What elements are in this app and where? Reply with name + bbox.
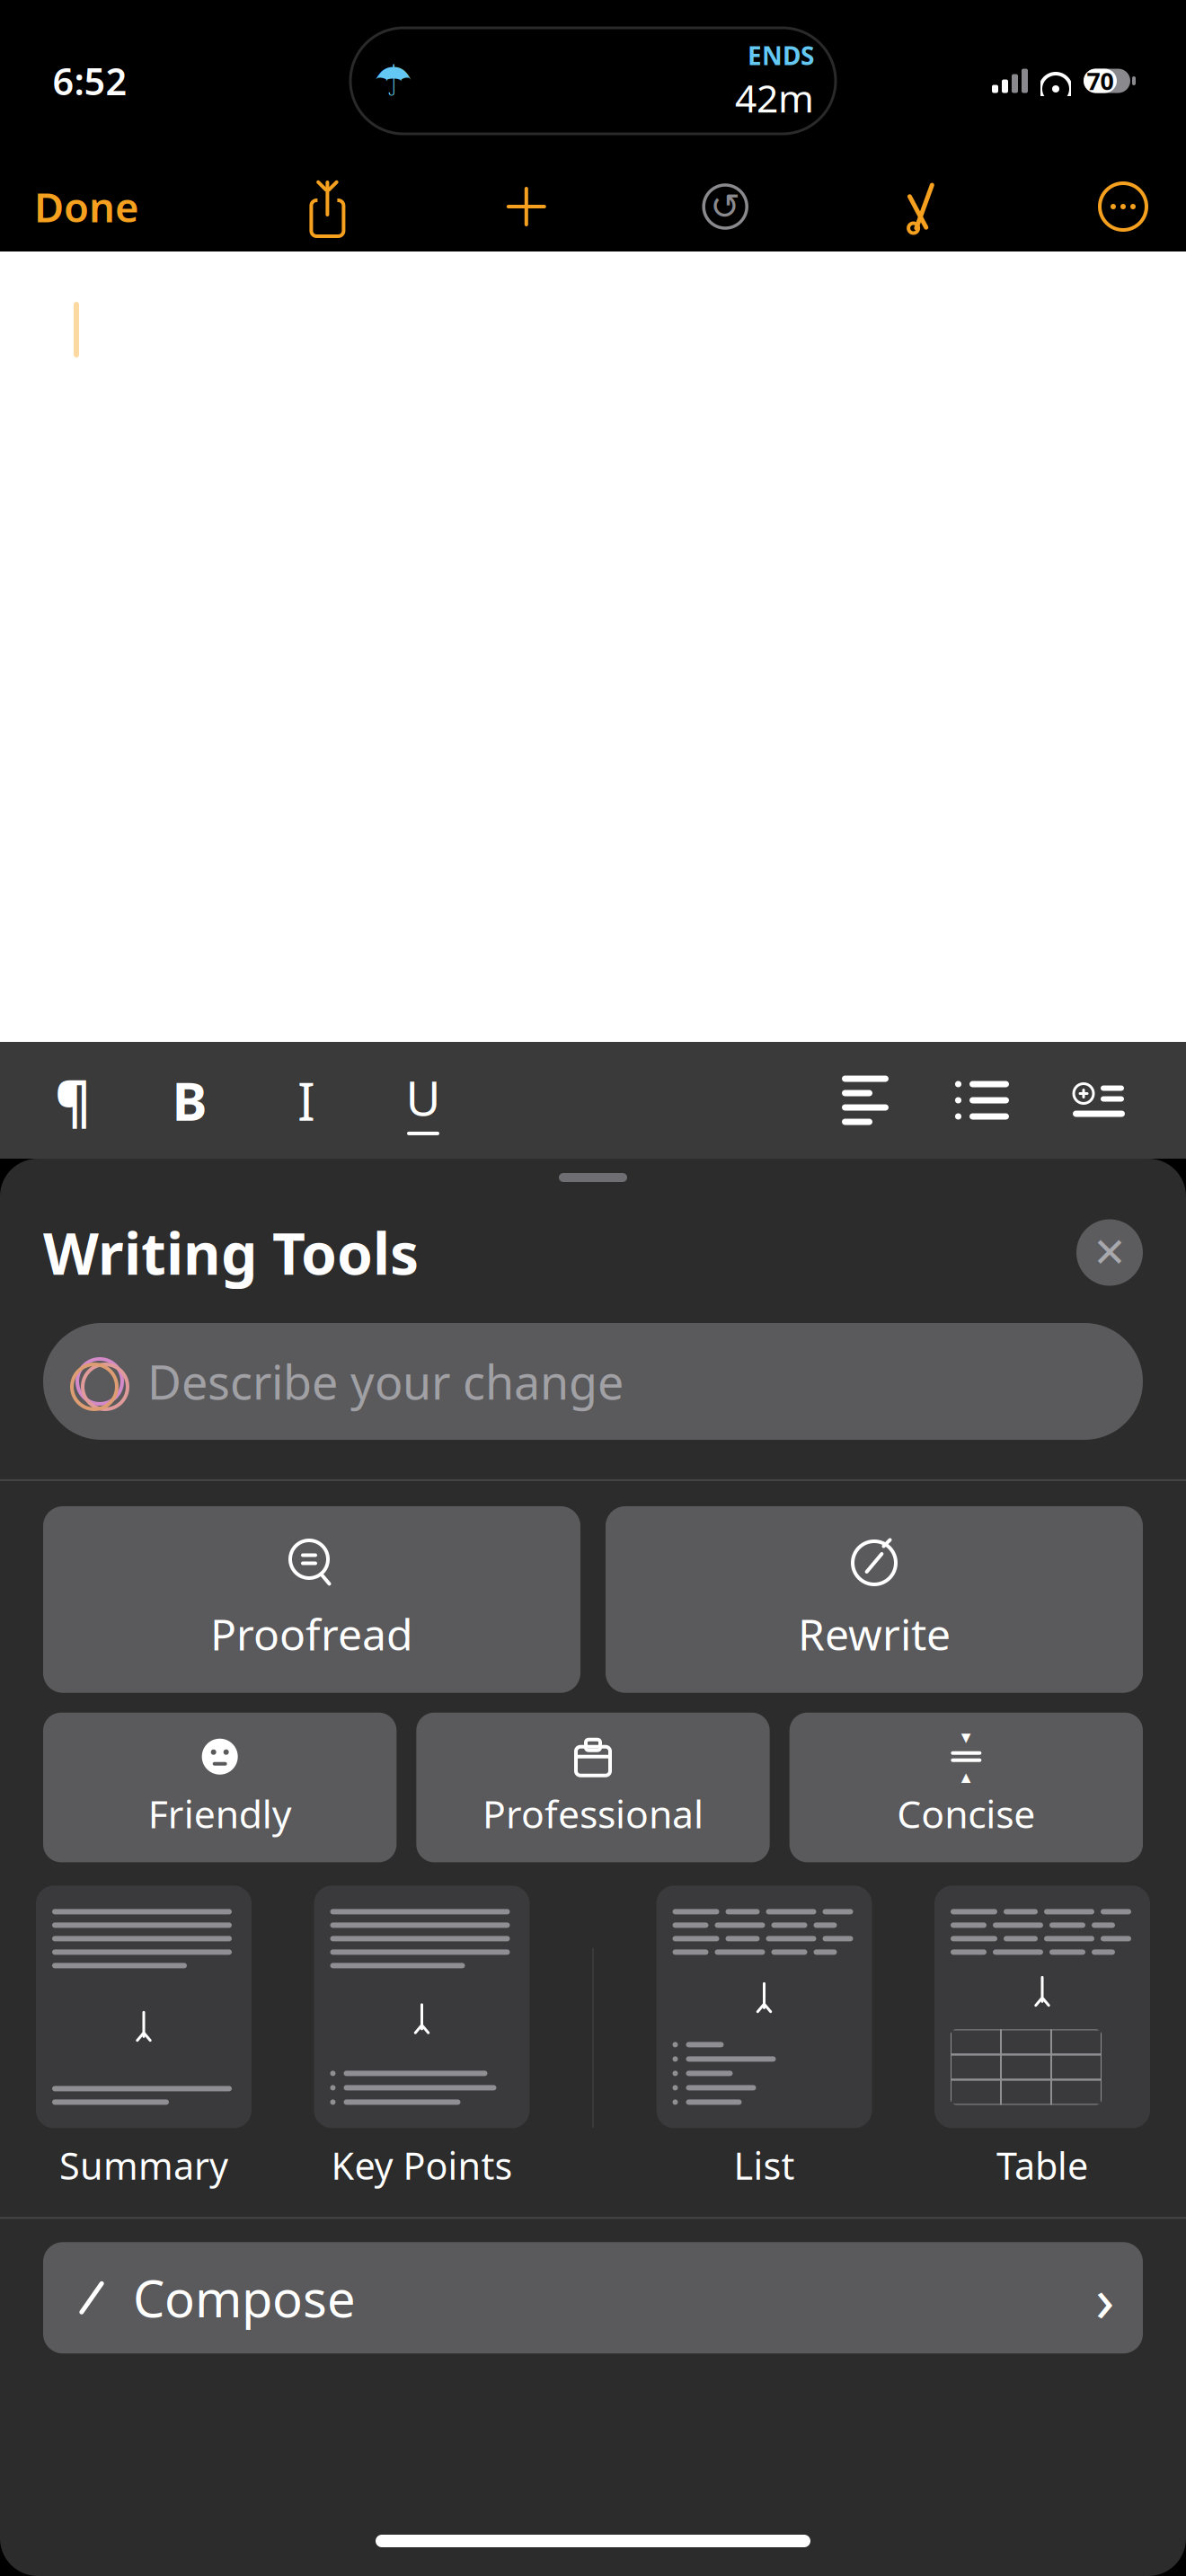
button[interactable]: Professional	[416, 1713, 770, 1862]
staticText: ▾	[961, 1726, 971, 1748]
button[interactable]: Key Points	[314, 1886, 530, 2190]
staticText: Friendly	[148, 1788, 292, 1839]
staticText: ¶	[55, 1064, 91, 1137]
staticText: ▴	[961, 1766, 971, 1787]
button[interactable]: Bulleted list	[924, 1046, 1040, 1154]
staticText: Writing Tools	[43, 1214, 419, 1291]
staticText: ↺	[710, 186, 741, 227]
button[interactable]: Add	[490, 171, 562, 243]
staticText: Describe your change	[147, 1350, 624, 1412]
button[interactable]: Friendly	[43, 1713, 397, 1862]
staticText: Professional	[482, 1788, 704, 1839]
staticText: U	[406, 1065, 441, 1129]
button[interactable]: Proofread	[43, 1506, 580, 1693]
button[interactable]: Paragraph style	[14, 1046, 131, 1154]
staticText: ☂	[374, 56, 412, 105]
staticText: Table	[996, 2141, 1088, 2190]
button[interactable]: Rewrite	[606, 1506, 1143, 1693]
staticText: Summary	[59, 2141, 228, 2190]
staticText: 6:52	[53, 56, 127, 106]
button[interactable]: Undo	[689, 171, 761, 243]
staticText: Key Points	[331, 2141, 513, 2190]
button[interactable]: Italic	[248, 1046, 365, 1154]
staticText: Concise	[897, 1788, 1035, 1839]
staticText: I	[297, 1065, 315, 1135]
button[interactable]: Insert	[1040, 1046, 1172, 1154]
button[interactable]: Table	[934, 1886, 1150, 2190]
staticText: 70	[1087, 65, 1114, 97]
button[interactable]: List	[656, 1886, 872, 2190]
button[interactable]: Alignment	[807, 1046, 924, 1154]
button[interactable]: Markup	[888, 171, 960, 243]
button[interactable]: Bold	[131, 1046, 248, 1154]
button[interactable]: Done	[9, 167, 164, 246]
staticText: Proofread	[210, 1605, 413, 1662]
button[interactable]: ▾	[789, 1713, 1143, 1862]
button[interactable]: Close	[1076, 1219, 1143, 1286]
button[interactable]: Share	[291, 171, 363, 243]
staticText: Compose	[133, 2264, 356, 2331]
staticText: ENDS	[748, 39, 814, 72]
staticText: B	[172, 1065, 207, 1135]
staticText: ›	[1095, 2256, 1114, 2339]
staticText: 42m	[735, 72, 814, 123]
staticText: List	[734, 2141, 795, 2190]
staticText: ✕	[1093, 1229, 1127, 1276]
button[interactable]: More	[1087, 171, 1159, 243]
button[interactable]: Underline	[365, 1046, 482, 1154]
staticText: Rewrite	[798, 1605, 951, 1662]
button[interactable]: Compose	[43, 2242, 1143, 2354]
button[interactable]: Summary	[36, 1886, 252, 2190]
staticText: Done	[34, 180, 139, 234]
button[interactable]: Describe your change	[43, 1323, 1143, 1440]
